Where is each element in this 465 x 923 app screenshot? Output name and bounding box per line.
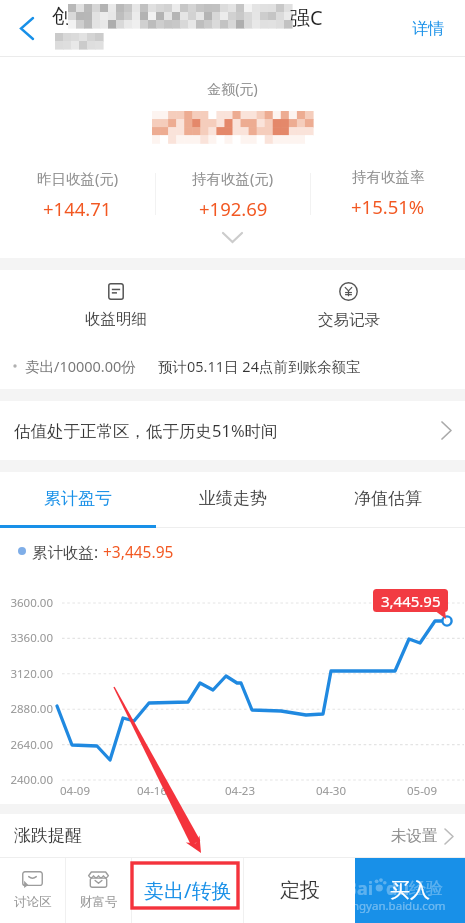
staticText: 预计05.11日 24点前到账余额宝 — [158, 356, 361, 376]
staticText: Bai — [345, 876, 374, 901]
staticText: 交易记录 — [318, 310, 380, 330]
staticText: +192.69 — [199, 196, 268, 221]
staticText: 涨跌提醒 — [14, 825, 82, 846]
staticText: +15.51% — [351, 194, 425, 219]
staticText: 估值处于正常区，低于历史51%时间 — [14, 419, 278, 442]
staticText: 财富号 — [80, 894, 118, 910]
staticText: 3360.00 — [0, 630, 53, 646]
button[interactable]: Expand — [0, 222, 465, 252]
staticText: 2640.00 — [0, 737, 53, 753]
staticText: 2400.00 — [0, 772, 53, 788]
staticText: 金额(元) — [0, 79, 465, 98]
staticText: 强C — [290, 4, 323, 31]
staticText: jingyan.baidu.com — [346, 898, 446, 914]
staticText: 业绩走势 — [199, 488, 267, 509]
staticText: +3,445.95 — [103, 541, 174, 562]
button[interactable]: 估值处于正常区，低于历史51%时间 — [0, 401, 465, 460]
button[interactable]: Back — [0, 0, 54, 57]
button[interactable]: 交易记录 — [232, 270, 465, 342]
button[interactable]: 定投 — [244, 857, 355, 923]
button[interactable]: 收益明细 — [0, 270, 232, 342]
staticText: 3600.00 — [0, 595, 53, 611]
staticText: 收益明细 — [85, 309, 147, 329]
button[interactable]: 财富号 — [66, 857, 131, 923]
staticText: 04-23 — [210, 783, 270, 799]
staticText: 卖出/10000.00份 — [25, 356, 136, 376]
button[interactable]: 净值估算 — [310, 472, 465, 528]
staticText: 昨日收益(元) — [37, 168, 119, 188]
staticText: 3,445.95 — [381, 591, 441, 611]
staticText: 净值估算 — [354, 488, 422, 509]
staticText: du — [386, 876, 410, 901]
staticText: 05-09 — [392, 783, 452, 799]
staticText: 未设置 — [391, 826, 438, 846]
staticText: 2880.00 — [0, 701, 53, 717]
button[interactable]: 讨论区 — [0, 857, 65, 923]
button[interactable]: 卖出/10000.00份 — [0, 342, 465, 389]
staticText: 讨论区 — [14, 894, 52, 910]
button[interactable]: 买入 — [355, 857, 465, 923]
staticText: 持有收益(元) — [192, 168, 274, 188]
staticText: 卖出/转换 — [144, 877, 232, 904]
button[interactable]: 累计盈亏 — [0, 472, 155, 528]
staticText: 04-30 — [301, 783, 361, 799]
staticText: 买入 — [390, 878, 430, 903]
staticText: 经验 — [409, 878, 443, 899]
staticText: 3120.00 — [0, 666, 53, 682]
staticText: 创 — [52, 4, 72, 29]
button[interactable]: 详情 — [390, 1, 465, 57]
staticText: 定投 — [280, 878, 320, 903]
staticText: 详情 — [412, 19, 444, 39]
staticText: 04-09 — [45, 783, 105, 799]
button[interactable]: 业绩走势 — [155, 472, 310, 528]
staticText: +144.71 — [43, 196, 112, 221]
button[interactable]: 涨跌提醒 — [0, 814, 465, 857]
staticText: 累计收益: — [32, 541, 103, 562]
button[interactable]: 卖出/转换 — [132, 857, 243, 923]
staticText: 04-16 — [122, 783, 182, 799]
staticText: 累计盈亏 — [44, 488, 112, 509]
staticText: 持有收益率 — [352, 168, 425, 186]
